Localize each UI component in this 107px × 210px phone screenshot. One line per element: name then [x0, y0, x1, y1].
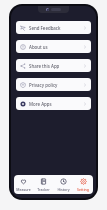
staticText: History [57, 187, 70, 192]
button[interactable]: Send Feedback [16, 21, 91, 34]
button[interactable]: More Apps [16, 97, 91, 110]
staticText: Tracker [37, 187, 50, 192]
button[interactable]: Share this App [16, 59, 91, 72]
staticText: Measure [16, 187, 31, 192]
staticText: About us [29, 44, 48, 50]
button[interactable]: Tracker [33, 175, 53, 194]
staticText: Privacy policy [29, 82, 58, 88]
button[interactable]: About us [16, 40, 91, 53]
staticText: Send Feedback [29, 25, 61, 31]
staticText: Setting [77, 187, 89, 192]
button[interactable]: History [53, 175, 73, 194]
button[interactable]: Measure [14, 175, 33, 194]
staticText: More Apps [29, 101, 52, 107]
button[interactable]: Privacy policy [16, 78, 91, 91]
staticText: Share this App [29, 63, 60, 69]
button[interactable]: Setting [73, 175, 93, 194]
